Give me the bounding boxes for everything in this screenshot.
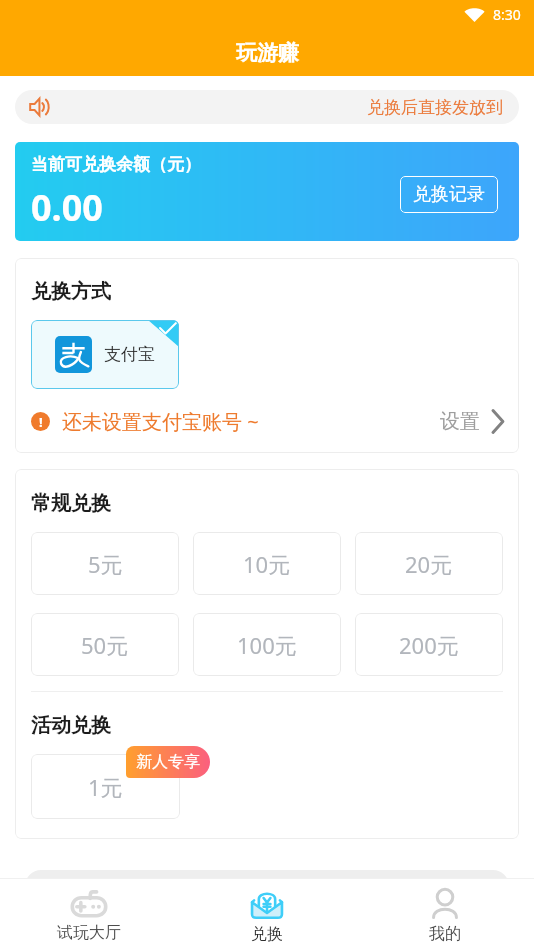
button[interactable]: 5元 — [31, 532, 179, 595]
other: WiFi — [464, 7, 485, 22]
staticText: 当前可兑换余额（元） — [31, 154, 201, 175]
staticText: 我的 — [429, 924, 461, 944]
staticText: 20元 — [405, 549, 453, 579]
button[interactable]: 试玩大厅 — [0, 883, 178, 949]
staticText: 兑换 — [251, 924, 283, 944]
other: 公告 — [28, 96, 50, 118]
other: 试玩大厅 — [70, 889, 108, 918]
other: 我的 — [432, 889, 458, 919]
staticText: 200元 — [399, 630, 459, 660]
other: 兑换 — [250, 889, 284, 919]
staticText: 活动兑换 — [31, 713, 111, 738]
staticText: 兑换后直接发放到 — [367, 97, 503, 118]
staticText: 10元 — [243, 549, 291, 579]
staticText: 试玩大厅 — [57, 923, 121, 943]
button[interactable]: 公告 — [15, 90, 519, 124]
staticText: 支付宝 — [104, 344, 155, 365]
button[interactable]: ! — [15, 408, 519, 453]
staticText: 50元 — [81, 630, 129, 660]
staticText: 100元 — [237, 630, 297, 660]
button[interactable]: 200元 — [355, 613, 503, 676]
staticText: 5元 — [88, 549, 123, 579]
staticText: 设置 — [440, 409, 480, 434]
staticText: 新人专享 — [136, 752, 200, 772]
button[interactable]: 支付宝 — [31, 320, 179, 389]
button[interactable]: 50元 — [31, 613, 179, 676]
button[interactable]: 20元 — [355, 532, 503, 595]
button[interactable]: 10元 — [193, 532, 341, 595]
staticText: 0.00 — [31, 183, 103, 232]
staticText: 兑换记录 — [413, 183, 485, 206]
button[interactable]: 1元 — [31, 754, 180, 819]
button[interactable]: 兑换 — [178, 883, 356, 949]
other: 设置 — [490, 409, 505, 434]
staticText: 还未设置支付宝账号 ~ — [62, 408, 259, 435]
staticText: 兑换方式 — [31, 279, 111, 304]
button[interactable]: 100元 — [193, 613, 341, 676]
button[interactable]: 我的 — [356, 883, 534, 949]
staticText: 常规兑换 — [31, 491, 111, 516]
staticText: ! — [39, 413, 43, 431]
button[interactable]: 兑换记录 — [400, 176, 498, 213]
staticText: 8:30 — [493, 5, 521, 24]
staticText: 1元 — [88, 772, 123, 802]
staticText: 玩游赚 — [236, 40, 299, 66]
